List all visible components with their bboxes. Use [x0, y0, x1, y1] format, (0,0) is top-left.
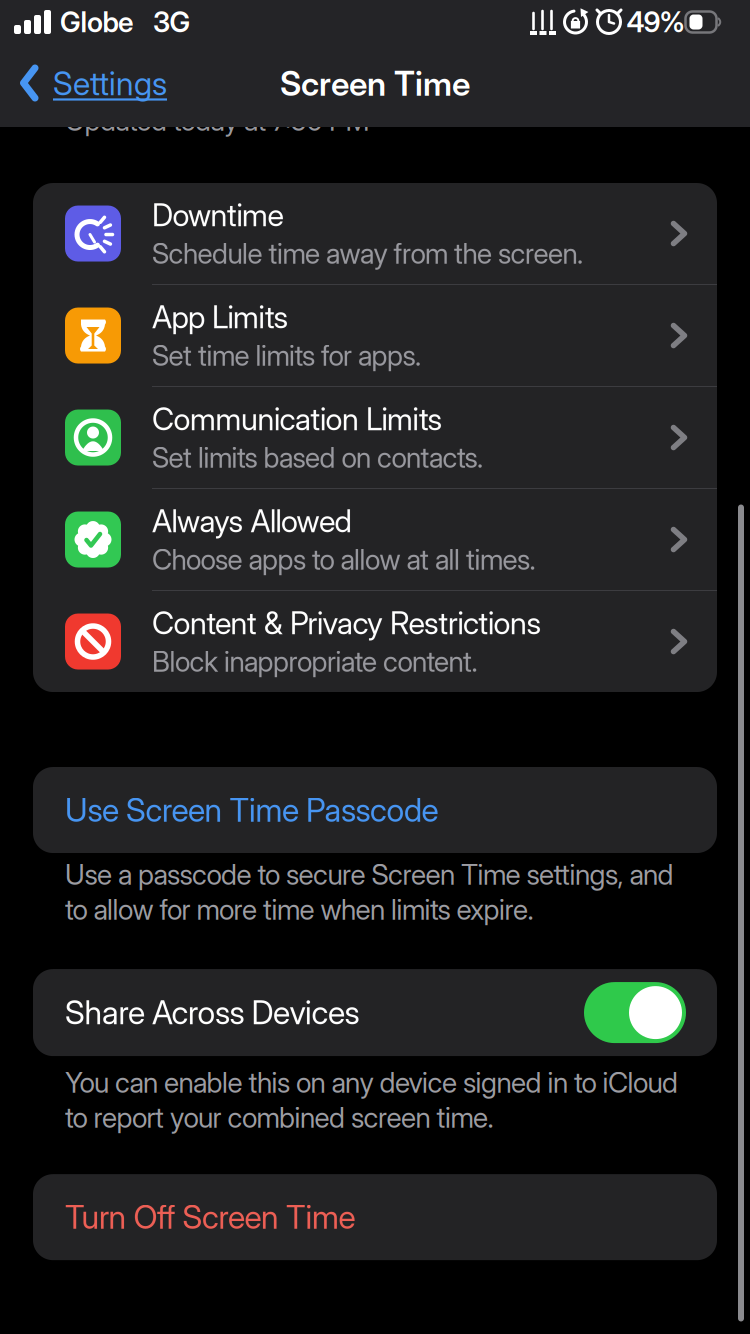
staticText: Use Screen Time Passcode	[65, 791, 438, 829]
staticText: Set time limits for apps.	[152, 339, 421, 372]
button[interactable]: Always Allowed	[33, 489, 717, 590]
staticText: Turn Off Screen Time	[65, 1198, 355, 1236]
staticText: 49%	[626, 5, 684, 38]
staticText: Always Allowed	[152, 503, 351, 539]
staticText: Schedule time away from the screen.	[152, 237, 583, 270]
staticText: You can enable this on any device signed…	[65, 1066, 678, 1099]
staticText: Content & Privacy Restrictions	[152, 605, 541, 641]
staticText: Screen Time	[280, 64, 470, 103]
button[interactable]: Communication Limits	[33, 387, 717, 488]
staticText: Downtime	[152, 197, 283, 233]
staticText: to report your combined screen time.	[65, 1101, 493, 1134]
staticText: App Limits	[152, 299, 288, 335]
staticText: Choose apps to allow at all times.	[152, 543, 535, 576]
button[interactable]: Downtime	[33, 183, 717, 284]
staticText: Updated today at 7:50 PM	[65, 104, 369, 137]
staticText: Communication Limits	[152, 401, 442, 437]
button[interactable]: Share Across Devices	[584, 982, 686, 1043]
staticText: Share Across Devices	[65, 994, 359, 1031]
staticText: to allow for more time when limits expir…	[65, 893, 533, 926]
button[interactable]: App Limits	[33, 285, 717, 386]
button[interactable]: Use Screen Time Passcode	[33, 767, 717, 853]
staticText: Settings	[53, 65, 167, 102]
staticText: Globe	[60, 5, 133, 38]
staticText: Block inappropriate content.	[152, 645, 477, 678]
staticText: 3G	[153, 5, 190, 38]
button[interactable]: Content & Privacy Restrictions	[33, 591, 717, 692]
button[interactable]: Back	[20, 65, 167, 102]
button[interactable]: Turn Off Screen Time	[33, 1174, 717, 1260]
staticText: Use a passcode to secure Screen Time set…	[65, 858, 673, 891]
staticText: Set limits based on contacts.	[152, 441, 483, 474]
